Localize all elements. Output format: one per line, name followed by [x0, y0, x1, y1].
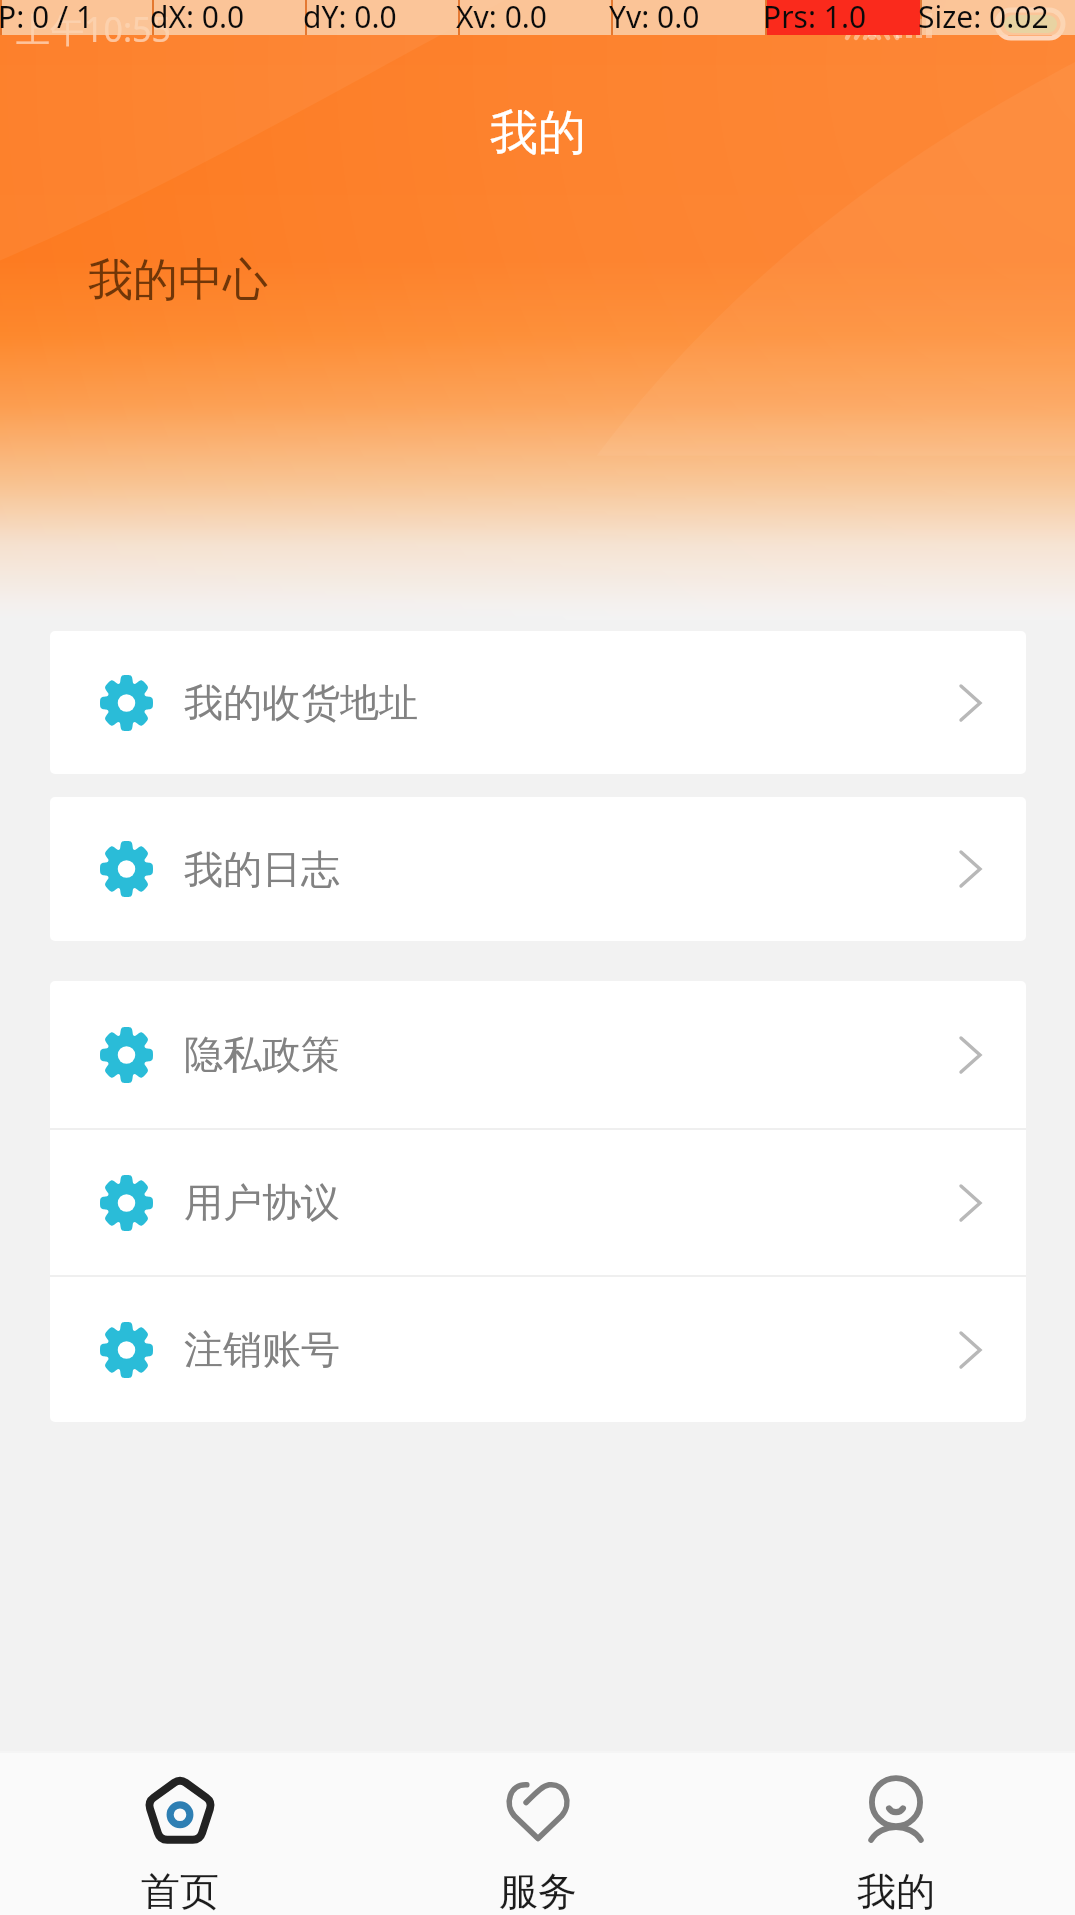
button[interactable]: 我的日志 [50, 797, 1026, 941]
button[interactable]: 我的 [717, 1753, 1075, 1915]
other: Open [959, 684, 982, 722]
staticText: Prs: 1.0 [763, 0, 867, 31]
button[interactable]: 隐私政策 [50, 981, 1026, 1128]
staticText: dY: 0.0 [303, 0, 397, 31]
staticText: 服务 [499, 1867, 577, 1915]
staticText: 注销账号 [184, 1325, 340, 1374]
button[interactable]: 首页 [0, 1753, 359, 1915]
other: Open [959, 1036, 982, 1074]
other: Open [959, 850, 982, 888]
staticText: 我的 [490, 103, 586, 163]
staticText: 我的中心 [88, 252, 268, 309]
other: Open [959, 1331, 982, 1369]
staticText: Size: 0.02 [918, 0, 1049, 31]
staticText: 上午10:55 [16, 6, 171, 52]
staticText: 隐私政策 [184, 1030, 340, 1079]
staticText: 我的收货地址 [184, 678, 418, 727]
other: Open [959, 1184, 982, 1222]
staticText: 我的 [857, 1867, 935, 1915]
button[interactable]: 服务 [359, 1753, 717, 1915]
staticText: 用户协议 [184, 1178, 340, 1227]
staticText: 首页 [141, 1867, 219, 1915]
staticText: dX: 0.0 [150, 0, 245, 31]
staticText: Xv: 0.0 [456, 0, 548, 31]
staticText: Yv: 0.0 [609, 0, 700, 31]
button[interactable]: 用户协议 [50, 1130, 1026, 1275]
button[interactable]: 我的收货地址 [50, 631, 1026, 774]
staticText: 我的日志 [184, 845, 340, 894]
staticText: P: 0 / 1 [0, 0, 94, 31]
button[interactable]: 注销账号 [50, 1277, 1026, 1422]
